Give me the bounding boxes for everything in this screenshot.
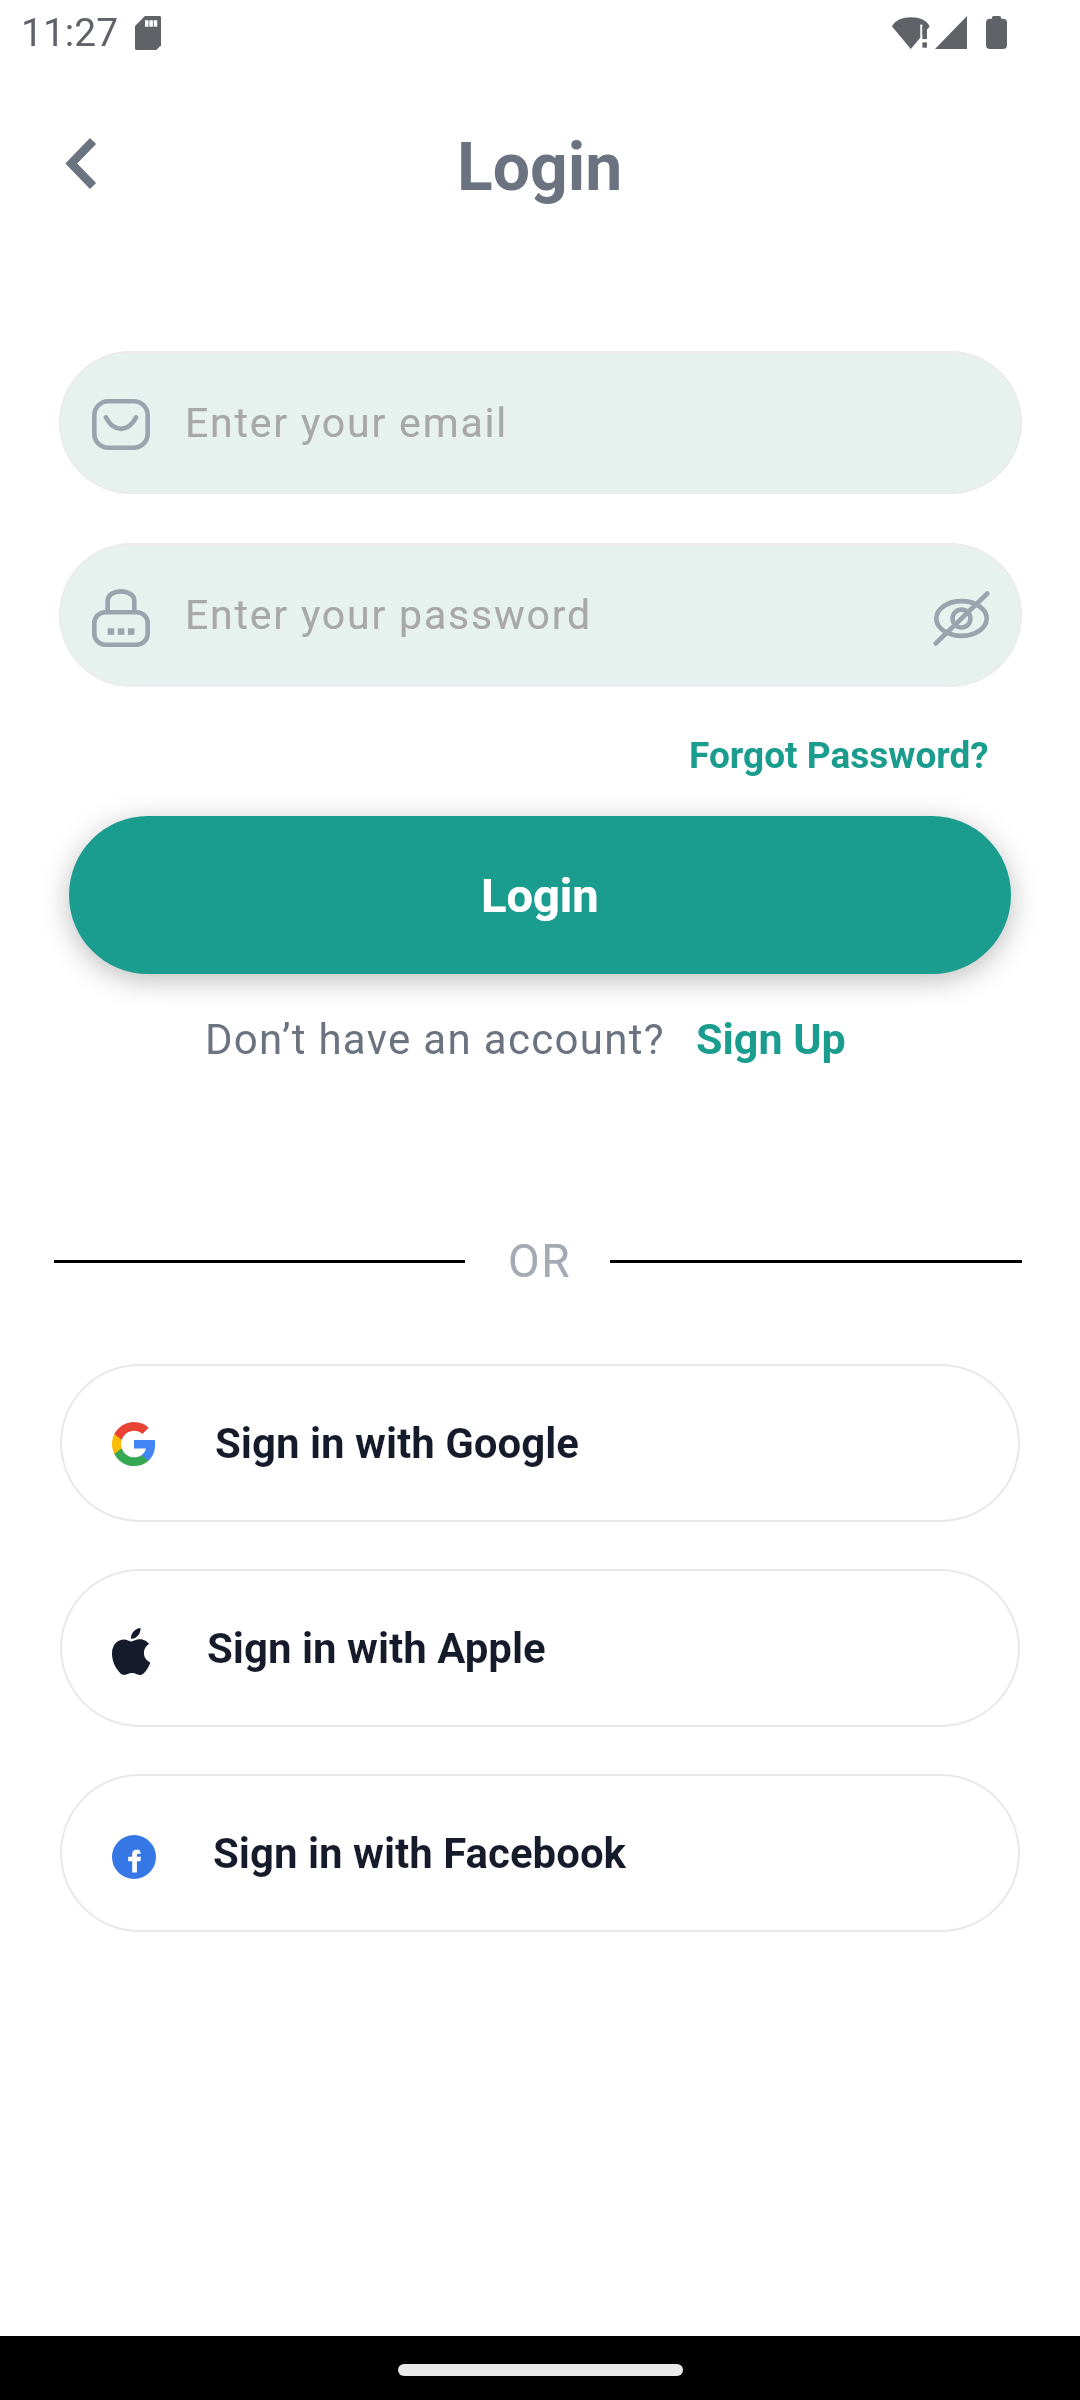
button[interactable]: Sign in with Google [60, 1364, 1020, 1522]
button[interactable]: Enter your email [59, 351, 1022, 494]
staticText: Sign in with Google [215, 1419, 580, 1468]
staticText: Enter your email [185, 399, 992, 447]
button[interactable]: Sign in with Apple [60, 1569, 1020, 1727]
button[interactable]: Login [69, 816, 1011, 974]
staticText: Don’t have an account? [205, 1015, 665, 1064]
button[interactable]: Forgot Password? [669, 726, 1009, 785]
button[interactable]: Sign Up [676, 1004, 866, 1074]
staticText: 11:27 [21, 10, 119, 56]
staticText: Forgot Password? [689, 734, 989, 777]
staticText: Login [457, 129, 623, 206]
staticText: Sign in with Apple [207, 1624, 546, 1673]
staticText: Sign Up [696, 1014, 846, 1064]
button[interactable]: Back [31, 113, 131, 213]
staticText: Enter your password [185, 591, 920, 639]
staticText: OR [508, 1234, 571, 1288]
button[interactable]: Show password [920, 579, 992, 651]
staticText: Sign in with Facebook [213, 1829, 627, 1878]
staticText: Login [481, 868, 599, 923]
button[interactable]: Sign in with Facebook [60, 1774, 1020, 1932]
button[interactable]: Enter your password [59, 543, 1022, 687]
